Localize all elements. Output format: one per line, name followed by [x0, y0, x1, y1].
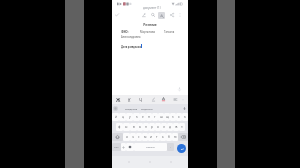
staticText: о [157, 125, 159, 129]
staticText: документ (1) [143, 6, 161, 10]
staticText: б [168, 135, 170, 139]
button[interactable]: Ч [136, 95, 145, 104]
button[interactable]: й [112, 113, 119, 121]
button[interactable]: ц [119, 113, 126, 121]
button[interactable]: родители [141, 107, 153, 110]
button[interactable]: Смешно [134, 143, 167, 151]
button[interactable]: р [149, 123, 155, 131]
staticText: Александровна [121, 35, 141, 39]
staticText: м [144, 135, 147, 139]
button[interactable]: ф [116, 123, 123, 131]
staticText: Резюме [112, 22, 188, 27]
button[interactable]: Emoji [126, 143, 134, 151]
staticText: щ [166, 115, 169, 119]
staticText: а [139, 125, 141, 129]
button[interactable]: Enter [177, 144, 186, 153]
button[interactable]: ж [173, 123, 179, 131]
staticText: ФИО: [121, 30, 129, 34]
staticText: и [150, 135, 152, 139]
button[interactable]: К [125, 95, 134, 104]
button[interactable]: э [179, 123, 185, 131]
staticText: ?123 [114, 146, 119, 149]
staticText: родители [141, 107, 153, 110]
button[interactable]: More options [176, 11, 183, 18]
staticText: н [148, 115, 150, 119]
button[interactable]: Settings [121, 143, 126, 151]
staticText: у [129, 115, 131, 119]
staticText: э [181, 125, 183, 129]
staticText: ъ [184, 115, 186, 119]
staticText: Мартынова [140, 30, 156, 34]
button[interactable]: ш [158, 113, 164, 121]
button[interactable]: д [167, 123, 173, 131]
button[interactable]: Shift [112, 133, 123, 141]
button[interactable]: Recents [167, 158, 175, 166]
button[interactable]: и [148, 133, 154, 141]
button[interactable]: я [123, 133, 130, 141]
button[interactable]: ъ [182, 113, 188, 121]
button[interactable]: ч [130, 133, 136, 141]
staticText: Татьяна [164, 30, 175, 34]
button[interactable]: а [137, 123, 143, 131]
staticText: з [172, 115, 174, 119]
staticText: с [138, 135, 140, 139]
button[interactable]: м [142, 133, 148, 141]
button[interactable]: Back [125, 158, 133, 166]
button[interactable]: е [140, 113, 146, 121]
button[interactable]: ?123 [112, 143, 121, 151]
button[interactable]: Alignment [171, 95, 180, 104]
button[interactable]: Text format [158, 12, 165, 19]
staticText: ю [174, 135, 177, 139]
button[interactable]: щ [164, 113, 170, 121]
button[interactable]: Done [113, 11, 120, 18]
staticText: к [136, 115, 138, 119]
button[interactable]: рождения [125, 107, 138, 110]
button[interactable]: Share [168, 11, 175, 18]
staticText: д [169, 125, 171, 129]
staticText: . [170, 145, 171, 149]
button[interactable]: с [136, 133, 142, 141]
button[interactable]: х [176, 113, 182, 121]
button[interactable]: г [152, 113, 158, 121]
staticText: ж [175, 125, 178, 129]
button[interactable]: н [146, 113, 152, 121]
staticText: Смешно [146, 146, 155, 149]
button[interactable]: Clipboard [113, 106, 118, 111]
staticText: х [178, 115, 180, 119]
button[interactable]: п [143, 123, 149, 131]
staticText: т [156, 135, 158, 139]
button[interactable]: Backspace [178, 133, 188, 141]
button[interactable]: в [130, 123, 137, 131]
staticText: Ч [139, 97, 142, 103]
button[interactable]: б [166, 133, 172, 141]
button[interactable]: к [133, 113, 140, 121]
button[interactable]: Search [149, 11, 156, 18]
button[interactable]: ю [172, 133, 178, 141]
button[interactable]: ы [123, 123, 130, 131]
staticText: ш [160, 115, 163, 119]
button[interactable]: з [170, 113, 176, 121]
staticText: п [145, 125, 147, 129]
staticText: ы [125, 125, 128, 129]
staticText: ь [162, 135, 164, 139]
staticText: Ж [116, 97, 121, 103]
staticText: я [126, 135, 128, 139]
button[interactable]: Ж [114, 95, 123, 104]
button[interactable]: Home [146, 158, 154, 166]
button[interactable]: Undo [140, 11, 147, 18]
button[interactable]: Highlight [149, 95, 158, 104]
button[interactable]: л [161, 123, 167, 131]
button[interactable]: у [126, 113, 133, 121]
button[interactable]: Voice typing [182, 106, 187, 111]
staticText: ч [132, 135, 134, 139]
staticText: р [151, 125, 153, 129]
button[interactable]: Text colour [159, 95, 168, 104]
staticText: К [128, 97, 131, 103]
staticText: й [115, 115, 117, 119]
button[interactable]: т [154, 133, 160, 141]
button[interactable]: о [155, 123, 161, 131]
button[interactable]: ь [160, 133, 166, 141]
button[interactable]: Voice input [175, 85, 184, 94]
